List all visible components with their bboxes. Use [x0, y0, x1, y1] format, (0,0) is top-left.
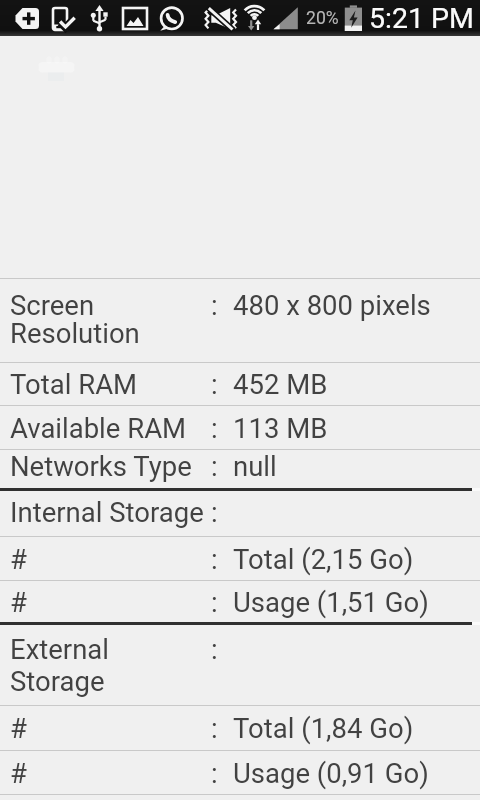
- staticText: 480 x 800 pixels: [233, 289, 431, 321]
- staticText: :: [211, 586, 218, 618]
- staticText: Total (1,84 Go): [233, 712, 414, 744]
- staticText: :: [211, 450, 218, 482]
- staticText: :: [211, 412, 218, 444]
- button[interactable]: Available RAM: [0, 406, 480, 449]
- staticText: :: [211, 633, 218, 665]
- button[interactable]: Total RAM: [0, 363, 480, 405]
- staticText: Screen: [10, 289, 95, 321]
- staticText: Total RAM: [10, 368, 138, 400]
- staticText: External: [10, 633, 110, 665]
- staticText: #: [10, 757, 27, 789]
- staticText: 452 MB: [233, 368, 328, 400]
- button[interactable]: Screen: [0, 279, 480, 362]
- staticText: 5:21 PM: [369, 2, 474, 35]
- staticText: Total (2,15 Go): [233, 543, 414, 575]
- button[interactable]: External: [0, 625, 480, 705]
- button[interactable]: #: [0, 581, 480, 622]
- staticText: null: [233, 450, 277, 482]
- staticText: 20%: [306, 8, 339, 29]
- staticText: #: [10, 543, 27, 575]
- staticText: :: [211, 368, 218, 400]
- staticText: Resolution: [10, 317, 140, 349]
- staticText: 113 MB: [233, 412, 328, 444]
- staticText: :: [211, 757, 218, 789]
- staticText: Storage: [10, 665, 105, 697]
- staticText: Available RAM: [10, 412, 187, 444]
- staticText: Usage (1,51 Go): [233, 586, 429, 618]
- staticText: #: [10, 586, 27, 618]
- staticText: Networks Type: [10, 450, 192, 482]
- button[interactable]: #: [0, 706, 480, 750]
- staticText: :: [211, 496, 218, 528]
- button[interactable]: Internal Storage: [0, 491, 480, 536]
- staticText: Usage (0,91 Go): [233, 757, 429, 789]
- button[interactable]: Networks Type: [0, 450, 480, 488]
- button[interactable]: #: [0, 751, 480, 794]
- staticText: Internal Storage: [10, 496, 204, 528]
- staticText: :: [211, 712, 218, 744]
- staticText: #: [10, 712, 27, 744]
- staticText: :: [211, 543, 218, 575]
- staticText: :: [211, 289, 218, 321]
- button[interactable]: #: [0, 537, 480, 580]
